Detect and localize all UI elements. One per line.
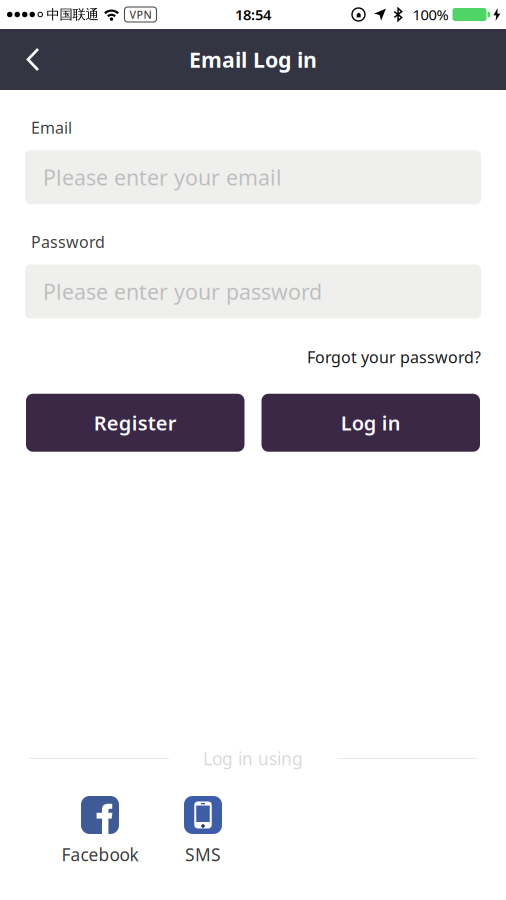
staticText: SMS xyxy=(185,843,221,866)
staticText: 100% xyxy=(412,5,448,24)
staticText: Log in xyxy=(341,409,401,436)
button[interactable]: Log in xyxy=(261,394,480,452)
staticText: Facebook xyxy=(61,843,138,866)
button[interactable]: Please enter your email xyxy=(25,150,481,204)
staticText: Please enter your email xyxy=(43,163,282,191)
staticText: 18:54 xyxy=(235,5,271,24)
button[interactable]: Back xyxy=(0,29,41,89)
staticText: Email Log in xyxy=(189,45,317,74)
staticText: Email xyxy=(31,117,72,138)
staticText: Forgot your password? xyxy=(307,346,481,368)
button[interactable]: Forgot your password? xyxy=(307,346,481,368)
button[interactable]: Log in with Facebook xyxy=(57,796,143,866)
staticText: Please enter your password xyxy=(43,277,322,306)
staticText: VPN xyxy=(129,7,151,22)
button[interactable]: Log in with SMS xyxy=(178,796,228,866)
staticText: 中国联通 xyxy=(46,6,98,23)
staticText: Register xyxy=(94,409,177,436)
button[interactable]: Please enter your password xyxy=(25,264,481,318)
button[interactable]: Register xyxy=(26,394,244,452)
staticText: Password xyxy=(31,231,105,252)
staticText: Log in using xyxy=(203,747,303,770)
